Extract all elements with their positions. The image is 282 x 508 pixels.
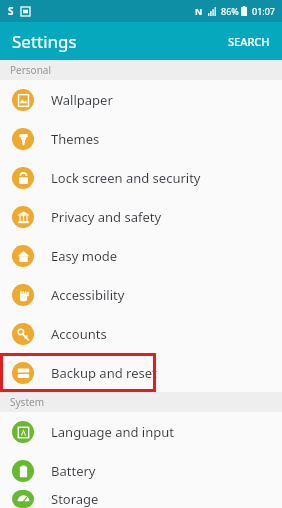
button[interactable]: Settings: [0, 26, 85, 57]
staticText: 01:07: [252, 5, 276, 17]
button[interactable]: Lock screen and security: [0, 158, 282, 197]
button[interactable]: Accessibility: [0, 275, 282, 314]
button[interactable]: Easy mode: [0, 236, 282, 275]
button[interactable]: Storage: [0, 490, 282, 508]
staticText: Privacy and safety: [51, 208, 162, 226]
staticText: Easy mode: [51, 247, 118, 265]
button[interactable]: Privacy and safety: [0, 197, 282, 236]
staticText: N: [195, 5, 203, 17]
staticText: 86%: [221, 5, 239, 17]
staticText: Accessibility: [51, 286, 125, 304]
button[interactable]: Themes: [0, 119, 282, 158]
staticText: Themes: [51, 130, 100, 148]
button[interactable]: Language and input: [0, 412, 282, 451]
button[interactable]: Accounts: [0, 314, 282, 353]
staticText: Settings: [12, 30, 77, 53]
staticText: Storage: [51, 490, 99, 508]
staticText: SEARCH: [228, 34, 270, 49]
staticText: Wallpaper: [51, 91, 113, 109]
staticText: Lock screen and security: [51, 169, 201, 187]
button[interactable]: Backup and reset: [0, 353, 282, 392]
staticText: S: [8, 4, 14, 18]
staticText: Accounts: [51, 325, 107, 343]
staticText: Personal: [10, 63, 52, 77]
staticText: Battery: [51, 462, 96, 480]
staticText: Backup and reset: [51, 364, 157, 382]
staticText: Language and input: [51, 423, 174, 441]
button[interactable]: Wallpaper: [0, 80, 282, 119]
button[interactable]: Battery: [0, 451, 282, 490]
button[interactable]: SEARCH: [216, 28, 282, 55]
staticText: System: [10, 395, 44, 409]
